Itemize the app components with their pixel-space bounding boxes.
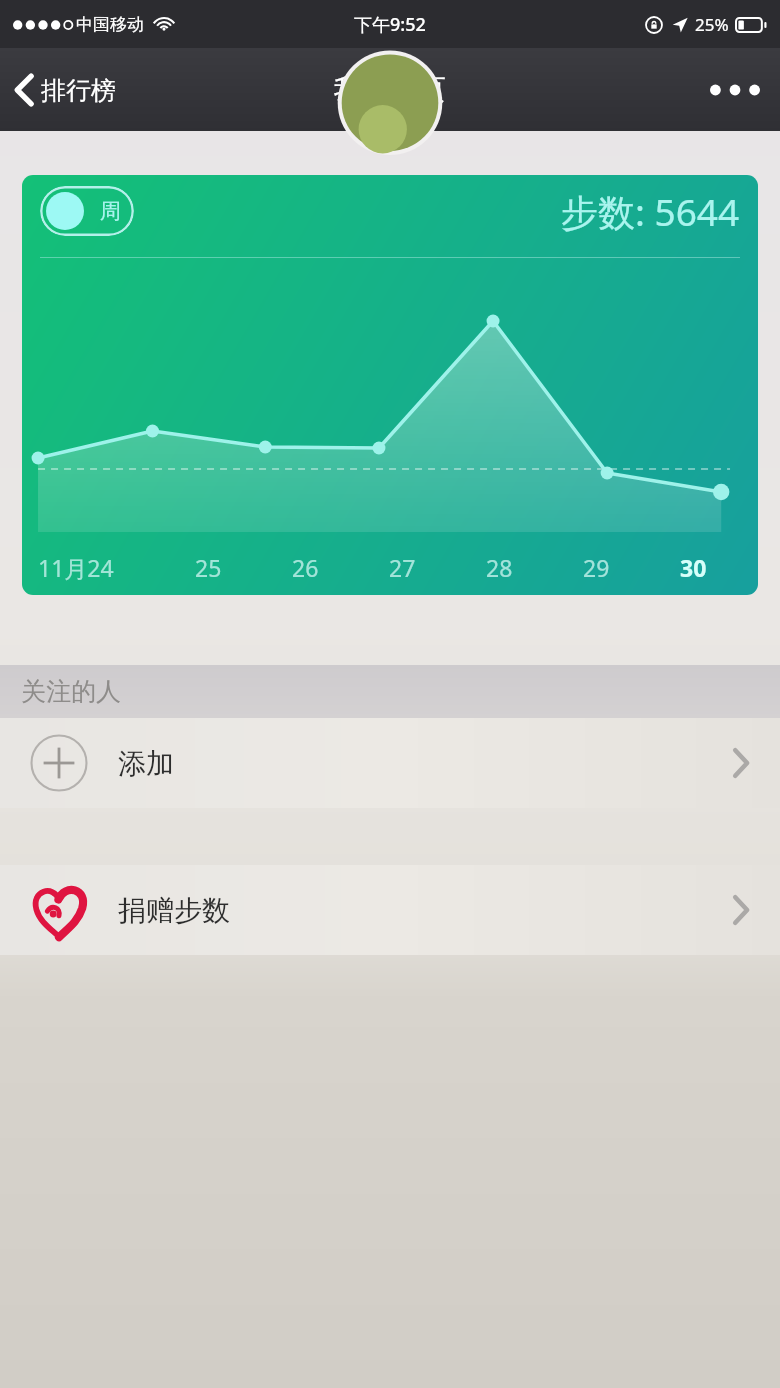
button[interactable]: 添加 xyxy=(0,718,780,808)
staticText: 25% xyxy=(695,13,729,36)
staticText: 关注的人 xyxy=(21,676,121,707)
button[interactable]: 捐赠步数 xyxy=(0,865,780,955)
staticText: 25 xyxy=(195,552,222,583)
staticText: 中国移动 xyxy=(76,14,144,35)
staticText: 周 xyxy=(100,198,121,224)
staticText: 捐赠步数 xyxy=(118,893,230,928)
staticText: 27 xyxy=(389,552,416,583)
staticText: 步数: 5644 xyxy=(561,186,740,237)
button[interactable]: 排行榜 xyxy=(0,61,132,119)
staticText: 添加 xyxy=(118,746,174,781)
button[interactable]: More options xyxy=(690,62,780,118)
staticText: 11月24 xyxy=(38,552,114,583)
staticText: 下午9:52 xyxy=(354,12,426,37)
staticText: 我的主页 xyxy=(334,72,446,107)
staticText: 30 xyxy=(680,552,707,583)
staticText: 26 xyxy=(292,552,319,583)
staticText: 排行榜 xyxy=(41,75,116,106)
staticText: 28 xyxy=(486,552,513,583)
button[interactable]: 周 xyxy=(40,186,134,236)
staticText: 29 xyxy=(583,552,610,583)
